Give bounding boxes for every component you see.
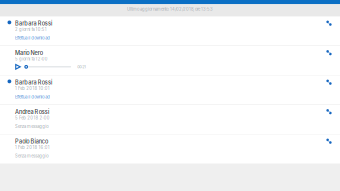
staticText: Barbara Rossi xyxy=(15,79,52,86)
staticText: Ultimo aggiornamento: 14/02/2018, ore 13… xyxy=(127,7,213,12)
staticText: Senza messaggio xyxy=(15,124,48,129)
staticText: Paolo Bianco xyxy=(15,138,48,145)
button[interactable]: Chiama xyxy=(321,45,337,61)
staticText: 5 giorni fa 12:00 xyxy=(15,57,48,62)
button[interactable]: Paolo Bianco xyxy=(0,134,340,163)
button[interactable]: Chiama xyxy=(321,74,337,90)
button[interactable]: Andrea Rossi xyxy=(0,105,340,134)
staticText: Effettua il download xyxy=(15,36,50,41)
button[interactable]: Chiama xyxy=(321,15,337,31)
staticText: Barbara Rossi xyxy=(15,20,52,27)
staticText: 5 Feb 2018 2:00 xyxy=(15,116,50,121)
button[interactable]: Barbara Rossi xyxy=(0,75,340,104)
button[interactable]: Barbara Rossi xyxy=(0,16,340,45)
staticText: 1 Feb 2018 10:01 xyxy=(15,86,50,91)
staticText: 2 giorni fa 10:51 xyxy=(15,27,47,32)
staticText: Andrea Rossi xyxy=(15,109,49,115)
staticText: Senza messaggio xyxy=(15,154,48,159)
staticText: 1 Feb 2018 16:01 xyxy=(15,145,50,150)
button[interactable]: Chiama xyxy=(321,104,337,120)
button[interactable]: Chiama xyxy=(321,133,337,149)
staticText: Mario Nero xyxy=(15,50,43,56)
button[interactable]: Mario Nero xyxy=(0,46,340,75)
staticText: Effettua il download xyxy=(15,95,50,100)
staticText: 00:21 xyxy=(77,64,86,69)
